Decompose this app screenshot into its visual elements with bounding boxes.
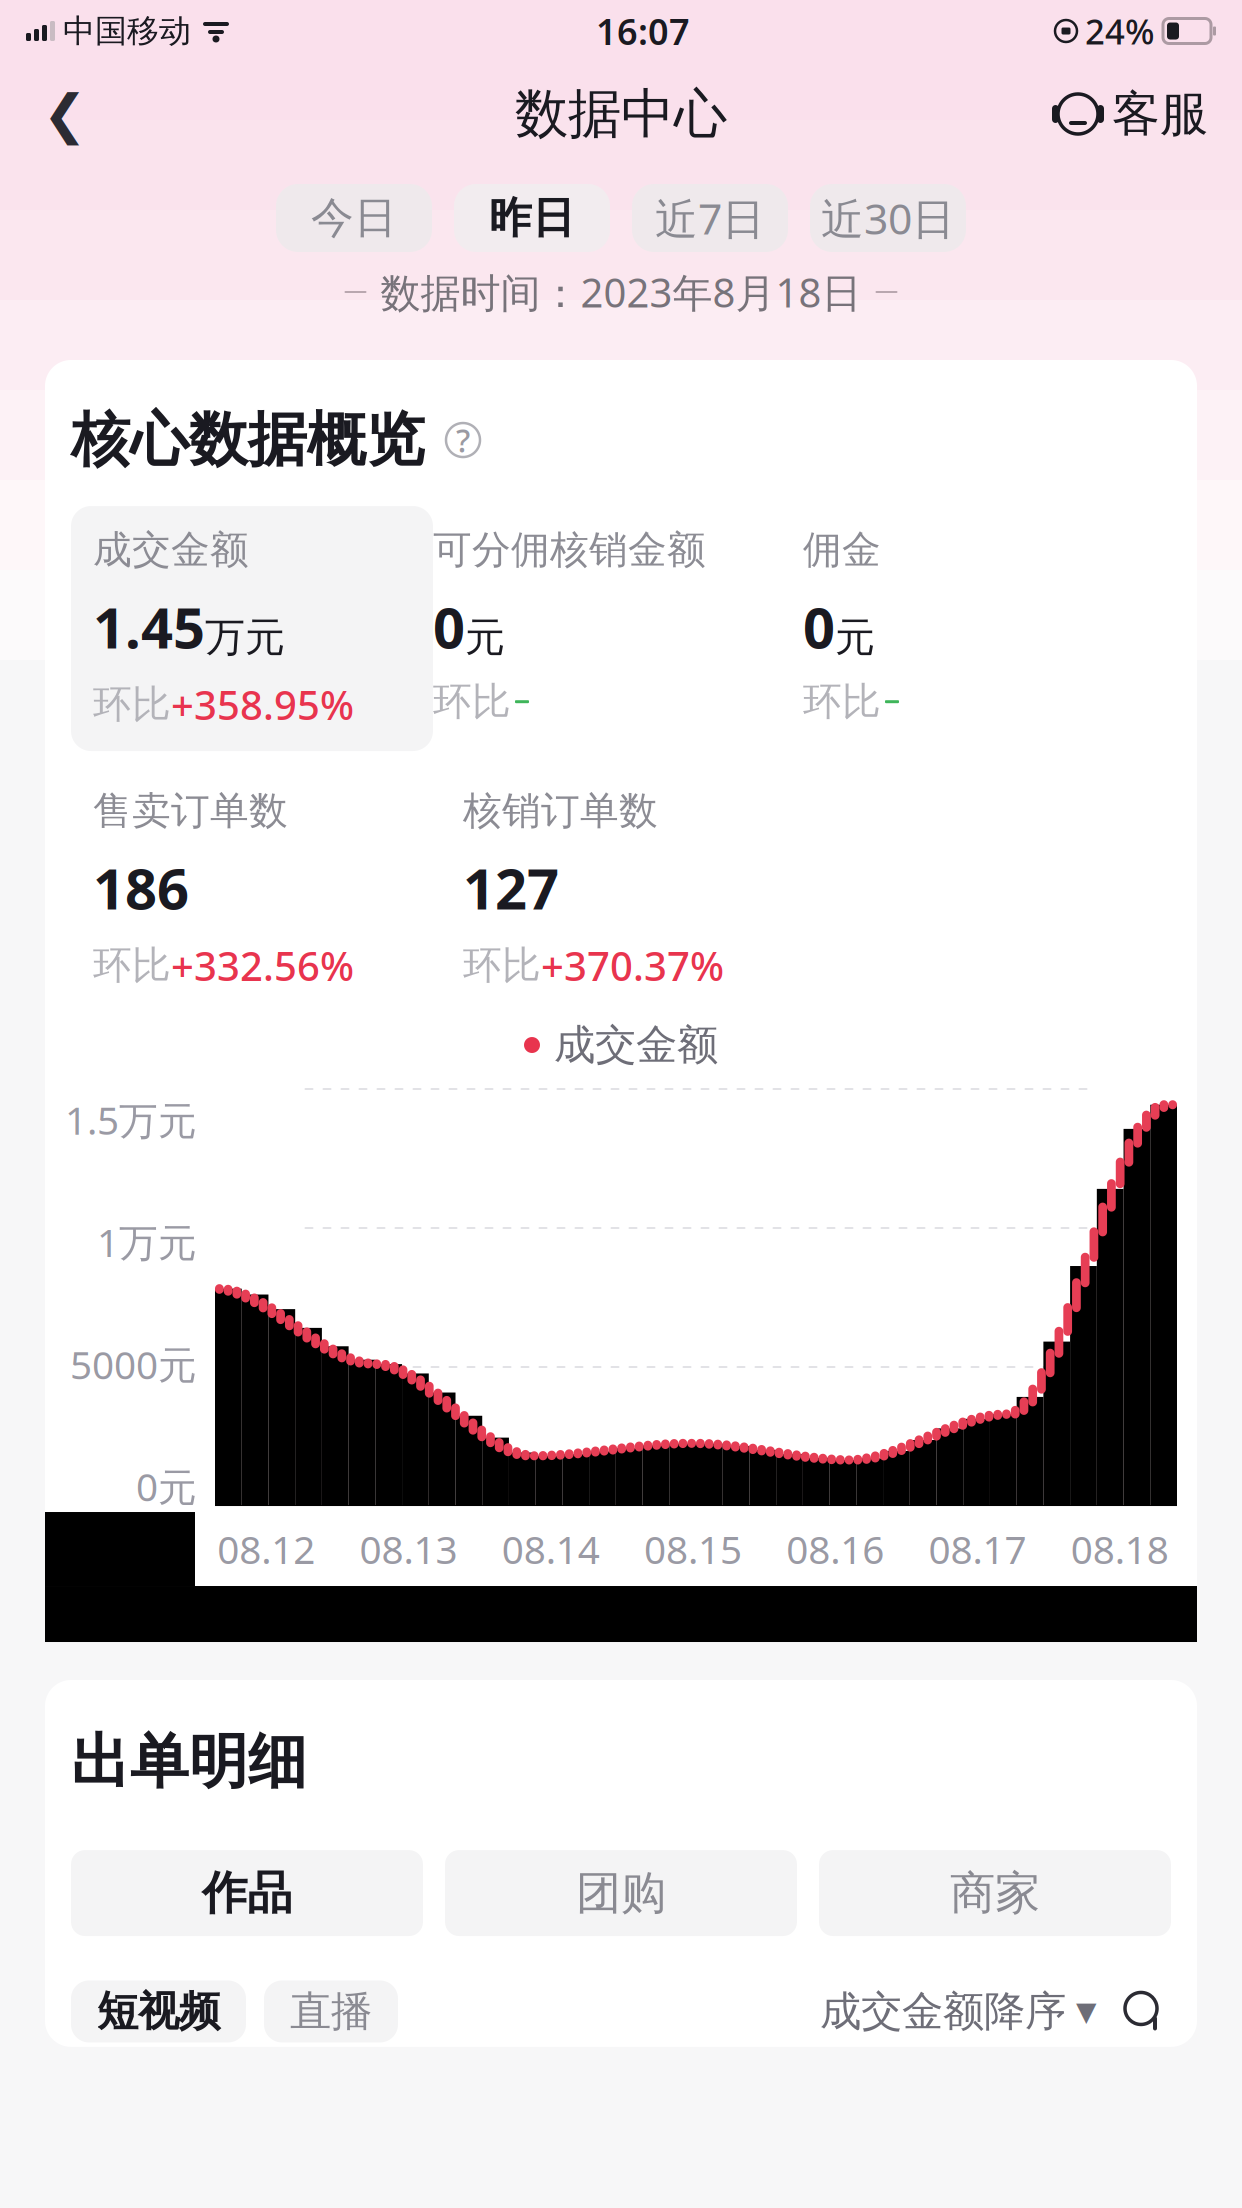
button[interactable]: 返回 bbox=[20, 69, 110, 159]
staticText: 08.14 bbox=[502, 1523, 600, 1575]
staticText: 环比 bbox=[433, 678, 511, 725]
staticText: 1.5万元 bbox=[65, 1094, 197, 1145]
staticText: 售卖订单数 bbox=[93, 787, 288, 834]
staticText: 出单明细 bbox=[71, 1726, 307, 1798]
button[interactable]: 昨日 bbox=[454, 184, 610, 252]
button[interactable]: 搜索 bbox=[1115, 1983, 1171, 2039]
staticText: 今日 bbox=[311, 192, 397, 244]
staticText: 元 bbox=[835, 613, 875, 662]
staticText: 客服 bbox=[1112, 84, 1208, 143]
button[interactable]: 直播 bbox=[264, 1980, 398, 2042]
button[interactable]: 团购 bbox=[445, 1850, 797, 1936]
staticText: +332.56% bbox=[171, 939, 354, 992]
staticText: 数据中心 bbox=[515, 81, 727, 147]
staticText: 近30日 bbox=[821, 190, 955, 246]
staticText: 成交金额降序 bbox=[820, 1986, 1066, 2037]
button[interactable]: 说明 bbox=[441, 418, 485, 462]
staticText: +358.95% bbox=[171, 678, 354, 731]
button[interactable]: 商家 bbox=[819, 1850, 1171, 1936]
button[interactable]: 客服 bbox=[1040, 69, 1222, 159]
staticText: 186 bbox=[93, 850, 189, 925]
button[interactable]: 成交金额降序 bbox=[820, 1976, 1097, 2047]
staticText: 环比 bbox=[463, 942, 541, 989]
staticText: 核销订单数 bbox=[463, 787, 658, 834]
staticText: 5000元 bbox=[70, 1338, 197, 1390]
staticText: 团购 bbox=[576, 1865, 666, 1921]
staticText: 0 bbox=[433, 590, 465, 664]
staticText: 成交金额 bbox=[93, 526, 249, 574]
staticText: 127 bbox=[463, 850, 559, 925]
staticText: ? bbox=[456, 419, 470, 461]
staticText: 1万元 bbox=[97, 1216, 197, 1267]
staticText: ▼ bbox=[1076, 1996, 1097, 2027]
staticText: 08.13 bbox=[359, 1523, 457, 1575]
staticText: 24% bbox=[1085, 8, 1155, 54]
staticText: 0元 bbox=[136, 1461, 197, 1512]
staticText: 16:07 bbox=[596, 7, 690, 55]
staticText: 08.17 bbox=[929, 1523, 1027, 1575]
staticText: 佣金 bbox=[803, 526, 881, 574]
staticText: 商家 bbox=[950, 1865, 1040, 1921]
staticText: 环比 bbox=[803, 678, 881, 725]
staticText: 直播 bbox=[290, 1986, 372, 2037]
staticText: 作品 bbox=[202, 1865, 292, 1921]
staticText: 可分佣核销金额 bbox=[433, 526, 706, 574]
button[interactable]: 作品 bbox=[71, 1850, 423, 1936]
button[interactable]: 今日 bbox=[276, 184, 432, 252]
staticText: 0 bbox=[803, 590, 835, 664]
staticText: 08.15 bbox=[644, 1523, 742, 1575]
staticText: ❮ bbox=[42, 84, 87, 144]
staticText: 数据时间：2023年8月18日 bbox=[380, 265, 861, 318]
staticText: 中国移动 bbox=[63, 11, 191, 51]
staticText: 成交金额 bbox=[554, 1020, 718, 1070]
button[interactable]: 近7日 bbox=[632, 184, 788, 252]
staticText: 近7日 bbox=[655, 190, 765, 246]
staticText: 08.12 bbox=[217, 1523, 315, 1575]
staticText: 万元 bbox=[205, 613, 285, 662]
staticText: 1.45 bbox=[93, 590, 205, 664]
staticText: 08.18 bbox=[1071, 1523, 1169, 1575]
staticText: 昨日 bbox=[489, 192, 575, 244]
staticText: 环比 bbox=[93, 942, 171, 989]
staticText: 08.16 bbox=[786, 1523, 884, 1575]
button[interactable]: 短视频 bbox=[71, 1980, 246, 2042]
staticText: 元 bbox=[465, 613, 505, 662]
button[interactable]: 近30日 bbox=[810, 184, 966, 252]
staticText: 环比 bbox=[93, 681, 171, 728]
staticText: 短视频 bbox=[97, 1986, 220, 2037]
staticText: +370.37% bbox=[541, 939, 724, 992]
staticText: 核心数据概览 bbox=[71, 404, 425, 476]
